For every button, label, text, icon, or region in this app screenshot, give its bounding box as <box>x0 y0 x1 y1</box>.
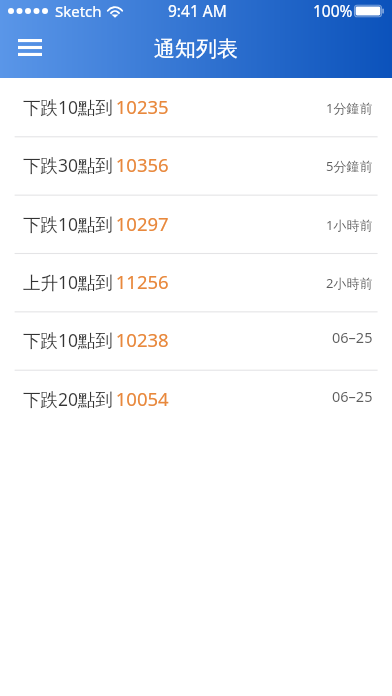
button[interactable]: 上升10點到 11256 <box>0 253 392 311</box>
staticText: 上升10點到 11256 <box>23 269 169 294</box>
button[interactable]: 下跌20點到 10054 <box>0 370 392 428</box>
button[interactable]: 下跌10點到 10238 <box>0 311 392 369</box>
staticText: 下跌10點到 10235 <box>23 94 169 119</box>
staticText: 2小時前 <box>326 274 373 292</box>
staticText: 下跌10點到 10238 <box>23 327 169 352</box>
staticText: 1小時前 <box>326 216 373 234</box>
staticText: 下跌30點到 10356 <box>23 152 169 177</box>
staticText: 5分鐘前 <box>326 157 373 175</box>
staticText: 下跌20點到 10054 <box>23 386 169 411</box>
staticText: 通知列表 <box>154 36 238 62</box>
staticText: 下跌10點到 10297 <box>23 211 169 236</box>
button[interactable]: 下跌10點到 10235 <box>0 78 392 136</box>
button[interactable]: 下跌10點到 10297 <box>0 195 392 253</box>
staticText: Sketch <box>55 1 102 21</box>
staticText: 100% <box>313 0 353 21</box>
staticText: 1分鐘前 <box>326 99 373 117</box>
staticText: 9:41 AM <box>168 0 227 21</box>
button[interactable]: 下跌30點到 10356 <box>0 136 392 194</box>
button[interactable]: Menu <box>7 25 52 69</box>
staticText: 06–25 <box>332 386 373 406</box>
staticText: 06–25 <box>332 327 373 347</box>
